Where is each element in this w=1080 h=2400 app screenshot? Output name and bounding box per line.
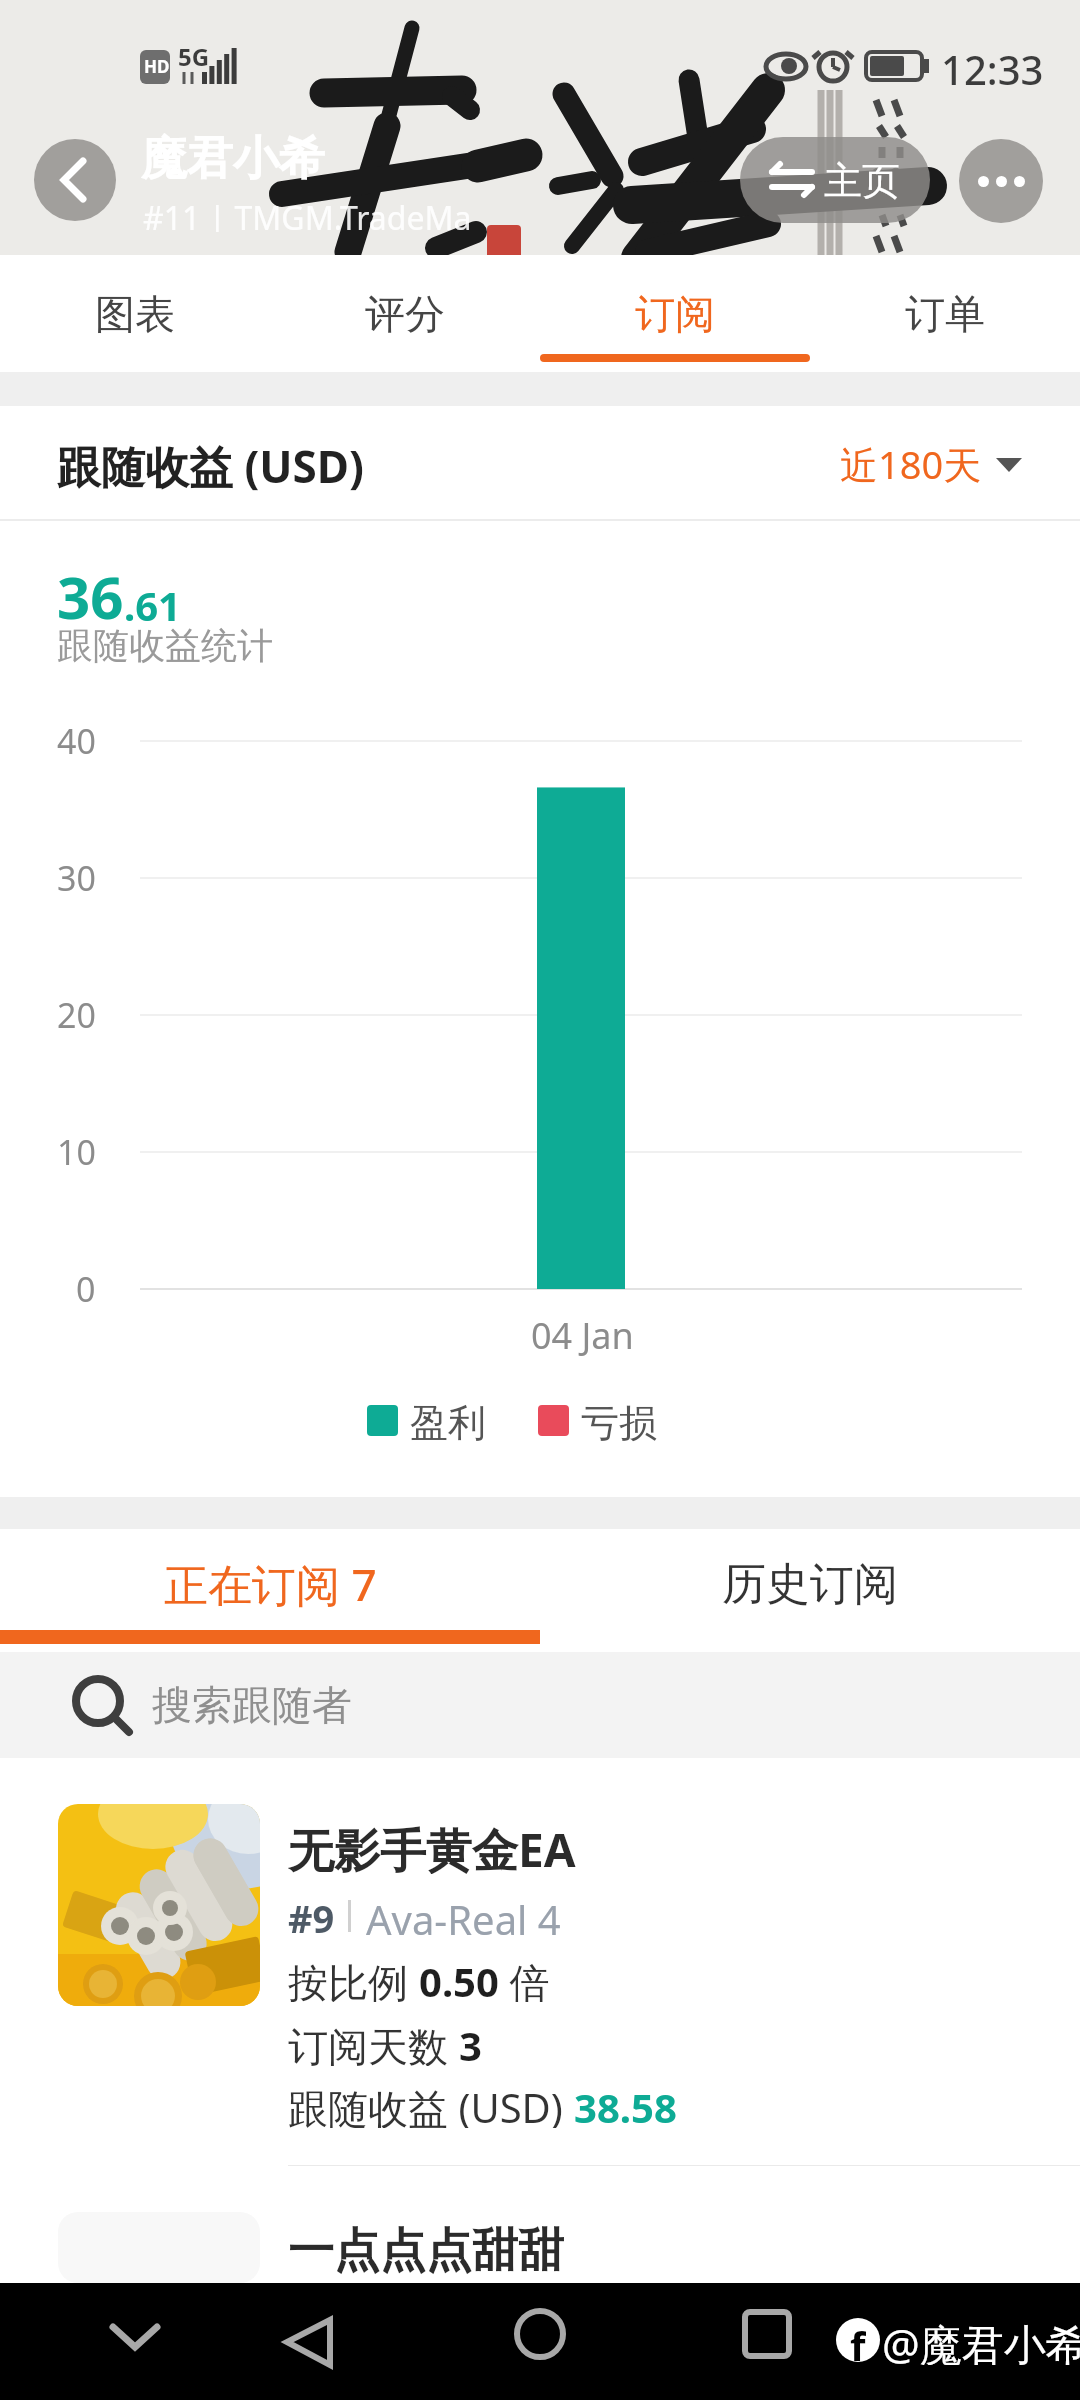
button[interactable] bbox=[258, 2285, 358, 2385]
staticText: 0.50 bbox=[419, 1954, 499, 2002]
button[interactable]: 无影手黄金EA bbox=[0, 1758, 1080, 2166]
staticText: 0 bbox=[76, 1266, 96, 1312]
button[interactable]: 订阅 bbox=[540, 255, 810, 372]
staticText: 亏损 bbox=[581, 1399, 657, 1443]
button[interactable]: 正在订阅 7 bbox=[0, 1529, 540, 1639]
staticText: .61 bbox=[124, 578, 181, 632]
button[interactable]: 搜索跟随者 bbox=[0, 1652, 1080, 1758]
staticText: 04 Jan bbox=[531, 1311, 634, 1359]
staticText: 5G bbox=[178, 40, 210, 70]
staticText: 36 bbox=[57, 557, 124, 636]
staticText: #11 | TMGM.TradeMa bbox=[143, 196, 472, 232]
staticText: 评分 bbox=[365, 289, 445, 339]
staticText: 无影手黄金EA bbox=[288, 1818, 576, 1874]
staticText: 30 bbox=[57, 855, 96, 901]
button[interactable]: 图表 bbox=[0, 255, 270, 372]
staticText: 40 bbox=[57, 718, 96, 764]
staticText: HD bbox=[144, 55, 170, 78]
button[interactable]: 主页 bbox=[740, 137, 930, 223]
staticText: 38.58 bbox=[574, 2080, 677, 2128]
staticText: 魔君小希 bbox=[141, 130, 325, 182]
button[interactable] bbox=[959, 139, 1043, 223]
button[interactable] bbox=[717, 2285, 817, 2385]
staticText: 跟随收益统计 bbox=[57, 623, 273, 668]
staticText: 主页 bbox=[824, 157, 900, 203]
staticText: 倍 bbox=[499, 1954, 550, 2002]
button[interactable]: 近180天 bbox=[840, 436, 1030, 492]
staticText: 按比例 bbox=[288, 1954, 419, 2002]
staticText: f bbox=[850, 2318, 866, 2362]
staticText: 搜索跟随者 bbox=[152, 1680, 352, 1730]
button[interactable] bbox=[34, 139, 116, 221]
staticText: @魔君小希 bbox=[882, 2315, 1080, 2365]
staticText: 跟随收益 (USD) bbox=[57, 436, 364, 492]
staticText: 图表 bbox=[95, 289, 175, 339]
staticText: 正在订阅 7 bbox=[164, 1554, 377, 1614]
staticText: 订单 bbox=[905, 289, 985, 339]
button[interactable] bbox=[85, 2285, 185, 2385]
staticText: 10 bbox=[57, 1129, 96, 1175]
staticText: 一点点点甜甜 bbox=[288, 2222, 564, 2278]
staticText: 历史订阅 bbox=[722, 1557, 898, 1612]
staticText: #9 bbox=[288, 1892, 335, 1940]
staticText: 盈利 bbox=[410, 1399, 486, 1443]
staticText: 订阅 bbox=[635, 289, 715, 339]
button[interactable]: 历史订阅 bbox=[540, 1529, 1080, 1639]
staticText: 跟随收益 (USD) bbox=[288, 2080, 574, 2128]
button[interactable]: 评分 bbox=[270, 255, 540, 372]
button[interactable]: 一点点点甜甜 bbox=[0, 2166, 1080, 2283]
staticText: 3 bbox=[459, 2018, 482, 2066]
staticText: 订阅天数 bbox=[288, 2018, 459, 2066]
staticText: 20 bbox=[57, 992, 96, 1038]
staticText: Ava-Real 4 bbox=[366, 1892, 561, 1940]
staticText: 近180天 bbox=[840, 438, 982, 490]
button[interactable] bbox=[490, 2285, 590, 2385]
staticText: 12:33 bbox=[941, 42, 1044, 90]
button[interactable]: 订单 bbox=[810, 255, 1080, 372]
